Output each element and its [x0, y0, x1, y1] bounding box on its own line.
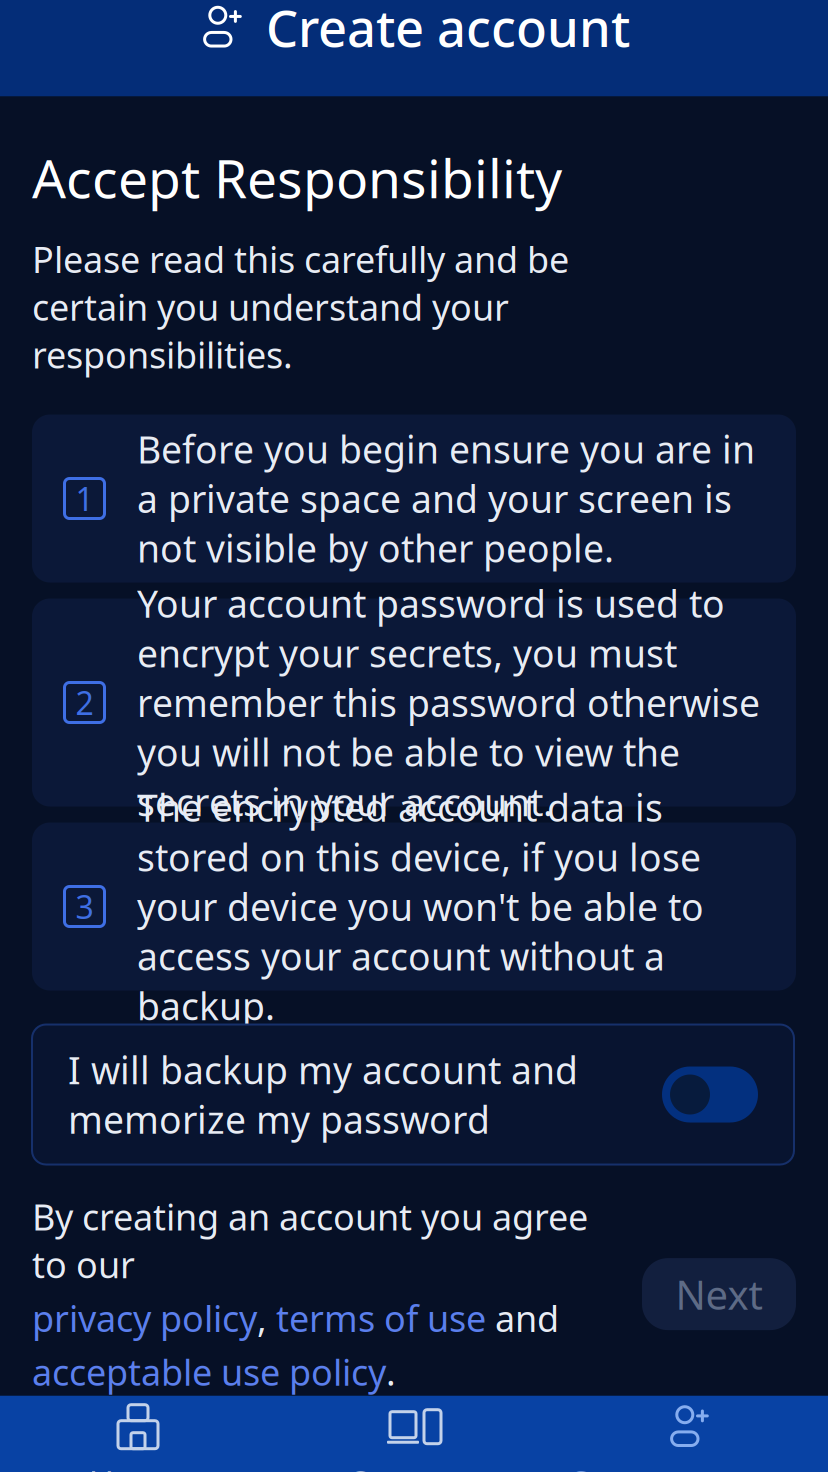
staticText: The encrypted account data is stored on … [137, 783, 704, 1030]
staticText: By creating an account you agree to our [32, 1192, 588, 1288]
button[interactable]: terms of use [276, 1294, 486, 1342]
staticText: and [486, 1294, 559, 1342]
staticText: 2 [75, 681, 93, 724]
staticText: acceptable use policy [32, 1348, 386, 1396]
staticText: , [257, 1294, 276, 1342]
staticText: Before you begin ensure you are in a pri… [137, 424, 755, 573]
staticText: Create account [266, 0, 630, 61]
staticText: Home [88, 1460, 187, 1472]
staticText: Please read this carefully and be certai… [32, 235, 569, 378]
staticText: 3 [75, 885, 93, 928]
button[interactable]: Create account [552, 1396, 828, 1472]
staticText: Accept Responsibility [32, 142, 562, 213]
button[interactable]: acceptable use policy [32, 1348, 386, 1396]
button[interactable]: Next [642, 1258, 796, 1330]
staticText: Create account [567, 1460, 813, 1472]
staticText: terms of use [276, 1294, 486, 1342]
staticText: privacy policy [32, 1294, 257, 1342]
staticText: 1 [75, 477, 93, 520]
button[interactable]: I will backup my account and memorize my… [32, 1024, 794, 1164]
staticText: . [386, 1348, 396, 1396]
staticText: Next [675, 1268, 762, 1321]
button[interactable]: privacy policy [32, 1294, 257, 1342]
staticText: I will backup my account and memorize my… [68, 1045, 578, 1144]
button[interactable]: Home [0, 1396, 276, 1472]
staticText: Connect [346, 1460, 481, 1472]
staticText: Your account password is used to encrypt… [137, 579, 760, 826]
button[interactable]: Connect [276, 1396, 552, 1472]
